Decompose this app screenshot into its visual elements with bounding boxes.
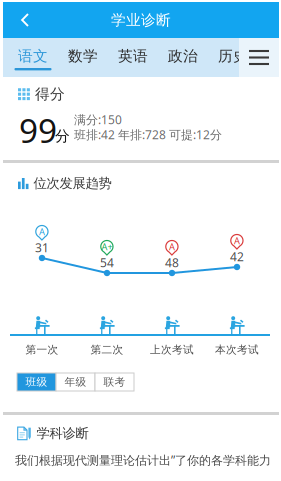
staticText: 英语 [118, 47, 148, 65]
staticText: 99 [19, 107, 57, 153]
staticText: 年级 [64, 375, 86, 389]
staticText: 数学 [68, 47, 98, 65]
button[interactable]: 班级 [17, 373, 56, 391]
staticText: 第二次 [90, 343, 123, 356]
staticText: 42 [230, 248, 244, 265]
staticText: 班排:42 年排:728 可提:12分 [74, 126, 222, 143]
staticText: 54 [100, 254, 114, 271]
staticText: 48 [165, 254, 179, 271]
button[interactable]: 语文 [8, 38, 58, 77]
staticText: 分 [55, 127, 70, 145]
staticText: A [234, 234, 240, 247]
staticText: A [169, 240, 175, 253]
staticText: 联考 [103, 375, 125, 389]
staticText: 满分:150 [74, 111, 122, 128]
staticText: 位次发展趋势 [33, 175, 111, 192]
button[interactable]: 数学 [58, 38, 108, 77]
button[interactable]: Menu [239, 38, 279, 77]
staticText: 班级 [25, 375, 47, 389]
button[interactable]: 历史 [208, 38, 258, 77]
button[interactable]: 英语 [108, 38, 158, 77]
staticText: 学科诊断 [36, 425, 88, 442]
staticText: 政治 [168, 47, 198, 65]
staticText: 语文 [18, 47, 48, 65]
staticText: 我们根据现代测量理论估计出”了你的各学科能力 [15, 452, 271, 468]
button[interactable]: 联考 [95, 373, 134, 391]
staticText: 上次考试 [150, 343, 194, 356]
staticText: 历史 [218, 47, 248, 65]
staticText: A [39, 225, 45, 238]
staticText: 31 [35, 239, 49, 256]
button[interactable]: 年级 [56, 373, 95, 391]
staticText: 第一次 [25, 343, 58, 356]
staticText: 学业诊断 [111, 11, 171, 29]
staticText: 本次考试 [215, 343, 259, 356]
button[interactable]: 政治 [158, 38, 208, 77]
button[interactable]: Back [3, 2, 37, 38]
staticText: A+ [101, 240, 112, 253]
staticText: 得分 [35, 85, 65, 103]
